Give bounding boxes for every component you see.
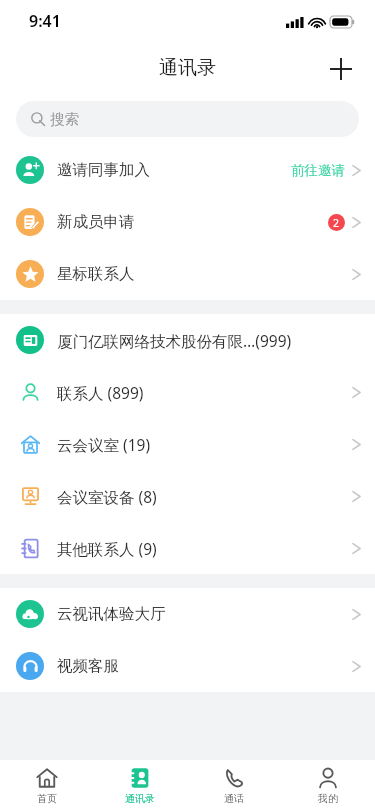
button[interactable]: 星标联系人 bbox=[0, 248, 375, 300]
button[interactable]: 邀请同事加入 bbox=[0, 144, 375, 196]
staticText: 联系人 (899) bbox=[57, 382, 352, 403]
staticText: 云会议室 (19) bbox=[57, 434, 352, 455]
button[interactable]: 会议室设备 (8) bbox=[0, 470, 375, 522]
button[interactable]: 搜索 bbox=[16, 101, 359, 137]
button[interactable]: 视频客服 bbox=[0, 640, 375, 692]
staticText: 首页 bbox=[37, 792, 57, 805]
staticText: 搜索 bbox=[50, 110, 79, 128]
button[interactable]: 通讯录 bbox=[93, 760, 187, 812]
staticText: 星标联系人 bbox=[57, 264, 352, 284]
button[interactable]: 厦门亿联网络技术股份有限…(999) bbox=[0, 314, 375, 366]
button[interactable]: 新成员申请 bbox=[0, 196, 375, 248]
button[interactable]: 其他联系人 (9) bbox=[0, 522, 375, 574]
staticText: 通话 bbox=[224, 792, 244, 805]
button[interactable]: 云视讯体验大厅 bbox=[0, 588, 375, 640]
staticText: 通讯录 bbox=[159, 56, 216, 80]
staticText: 我的 bbox=[318, 792, 338, 805]
staticText: 邀请同事加入 bbox=[57, 160, 291, 180]
staticText: 其他联系人 (9) bbox=[57, 538, 352, 559]
staticText: 新成员申请 bbox=[57, 212, 328, 232]
button[interactable]: 通话 bbox=[187, 760, 281, 812]
staticText: 前往邀请 bbox=[291, 162, 345, 179]
staticText: 视频客服 bbox=[57, 656, 352, 676]
staticText: 2 bbox=[333, 216, 340, 230]
staticText: 会议室设备 (8) bbox=[57, 486, 352, 507]
staticText: 厦门亿联网络技术股份有限…(999) bbox=[57, 330, 352, 351]
staticText: 云视讯体验大厅 bbox=[57, 604, 352, 624]
button[interactable]: 我的 bbox=[281, 760, 375, 812]
button[interactable]: Add bbox=[319, 47, 363, 91]
button[interactable]: 首页 bbox=[0, 760, 93, 812]
staticText: 9:41 bbox=[29, 10, 61, 32]
button[interactable]: 云会议室 (19) bbox=[0, 418, 375, 470]
staticText: 通讯录 bbox=[125, 792, 155, 805]
button[interactable]: 联系人 (899) bbox=[0, 366, 375, 418]
